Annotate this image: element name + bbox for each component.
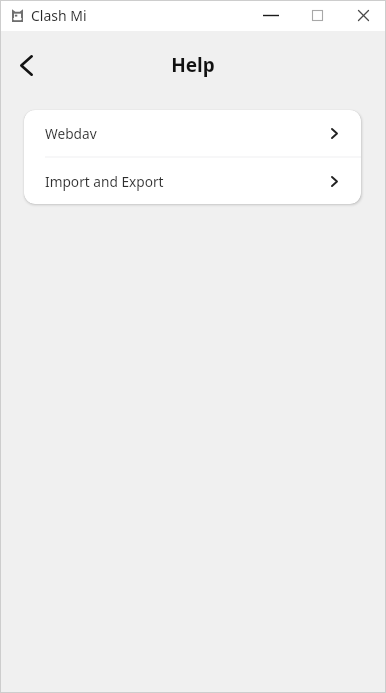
button[interactable]: Minimize <box>248 0 294 31</box>
button[interactable]: Maximize <box>294 0 340 31</box>
staticText: Help <box>171 52 215 78</box>
button[interactable]: Webdav <box>24 110 361 156</box>
staticText: Import and Export <box>45 172 164 191</box>
staticText: Webdav <box>45 124 97 143</box>
button[interactable]: Import and Export <box>24 158 361 204</box>
button[interactable]: Close <box>340 0 386 31</box>
staticText: Clash Mi <box>31 6 87 25</box>
button[interactable]: Back <box>6 45 46 85</box>
